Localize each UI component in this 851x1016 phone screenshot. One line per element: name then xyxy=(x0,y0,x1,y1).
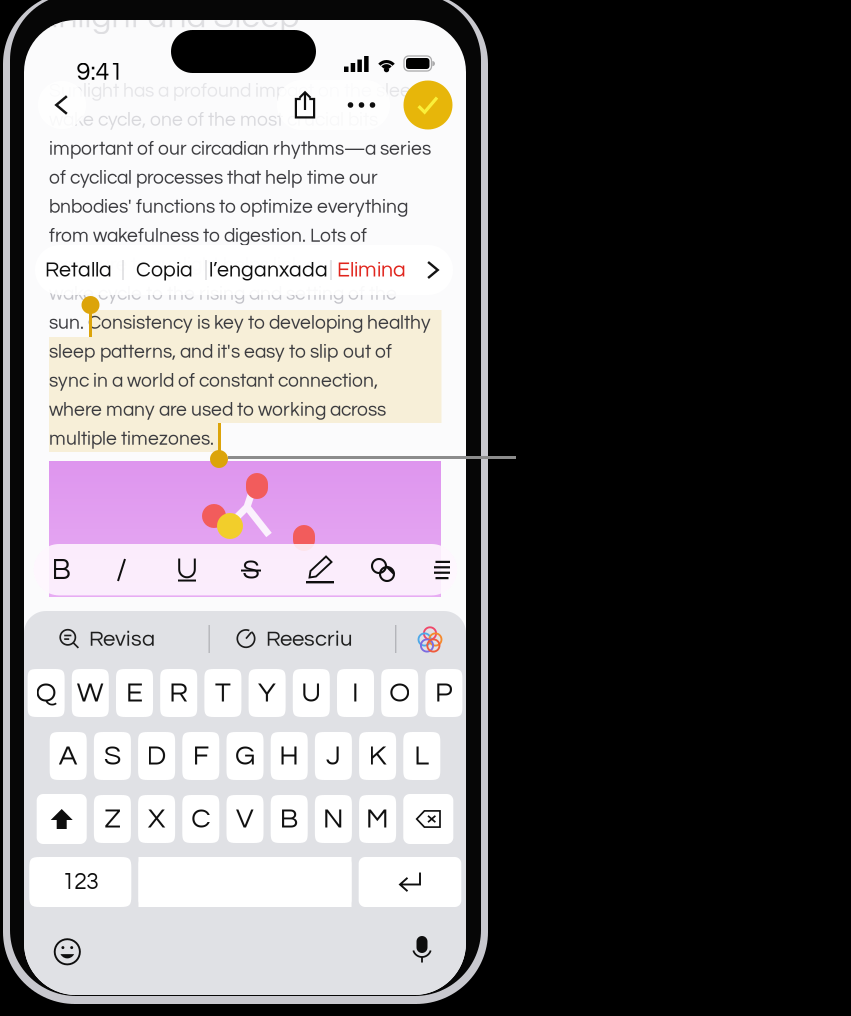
button[interactable]: Bold xyxy=(24,20,466,995)
button[interactable]: 123 xyxy=(29,857,131,907)
button[interactable]: List style xyxy=(24,20,466,995)
staticText: H xyxy=(279,742,299,770)
button[interactable]: X xyxy=(138,795,175,843)
button[interactable]: Z xyxy=(94,795,131,843)
button[interactable]: S xyxy=(94,732,131,780)
button[interactable]: Share xyxy=(277,80,333,130)
staticText: multiple timezones. xyxy=(49,429,214,449)
staticText: Q xyxy=(36,679,57,707)
button[interactable]: Strikethrough xyxy=(24,20,466,995)
staticText: S xyxy=(104,742,121,770)
staticText: Revisa xyxy=(89,628,155,650)
button[interactable]: Apple Intelligence xyxy=(24,20,466,995)
button[interactable]: E xyxy=(116,669,153,717)
staticText: T xyxy=(215,679,231,707)
staticText: I xyxy=(352,679,359,707)
staticText: B xyxy=(280,805,299,833)
button[interactable]: U xyxy=(293,669,330,717)
staticText: Elimina xyxy=(337,259,406,281)
staticText: bnbodies' functions to optimize everythi… xyxy=(49,197,408,217)
staticText: wake cycle, one of the most crucial bits xyxy=(49,110,378,130)
button[interactable]: T xyxy=(204,669,241,717)
button[interactable]: I xyxy=(337,669,374,717)
staticText: A xyxy=(59,742,78,770)
staticText: O xyxy=(389,679,410,707)
staticText: Retalla xyxy=(45,259,112,281)
staticText: K xyxy=(369,742,387,770)
staticText: V xyxy=(236,805,254,833)
button[interactable]: Dictate xyxy=(24,20,466,995)
button[interactable]: W xyxy=(72,669,109,717)
staticText: Z xyxy=(104,805,120,833)
button[interactable]: B xyxy=(271,795,308,843)
staticText: important of our circadian rhythms—a ser… xyxy=(49,139,431,159)
staticText: Reescriu xyxy=(266,628,352,650)
staticText: E xyxy=(126,679,143,707)
button[interactable]: V xyxy=(226,795,263,843)
staticText: Sunlight has a profound impact on the sl… xyxy=(49,81,429,101)
button[interactable]: Underline xyxy=(24,20,466,995)
button[interactable]: Shift xyxy=(37,794,87,844)
staticText: M xyxy=(366,805,389,833)
button[interactable]: D xyxy=(138,732,175,780)
staticText: R xyxy=(169,679,188,707)
staticText: sleep patterns, and it's easy to slip ou… xyxy=(49,342,392,362)
staticText: exposure to sunlight helps link our more xyxy=(49,255,384,275)
staticText: W xyxy=(77,679,104,707)
button[interactable]: R xyxy=(160,669,197,717)
staticText: X xyxy=(148,805,165,833)
button[interactable]: H xyxy=(271,732,308,780)
button[interactable]: A xyxy=(50,732,87,780)
staticText: J xyxy=(326,742,341,770)
staticText: wake cycle to the rising and setting of … xyxy=(49,284,397,304)
button[interactable]: l’enganxada xyxy=(206,245,330,295)
button[interactable]: Link xyxy=(24,20,466,995)
button[interactable]: Copia xyxy=(123,245,205,295)
button[interactable]: More xyxy=(333,80,390,130)
staticText: C xyxy=(191,805,210,833)
staticText: L xyxy=(414,742,429,770)
button[interactable]: C xyxy=(182,795,219,843)
button[interactable]: Delete xyxy=(403,794,453,844)
button[interactable]: Highlight xyxy=(24,20,466,995)
button[interactable]: O xyxy=(381,669,418,717)
staticText: Sunlight and Sleep xyxy=(18,0,299,34)
staticText: P xyxy=(435,679,453,707)
staticText: 9:41 xyxy=(76,59,123,85)
button[interactable]: Reescriu xyxy=(24,20,466,995)
button[interactable]: Done xyxy=(24,20,466,995)
staticText: from wakefulness to digestion. Lots of xyxy=(49,226,367,246)
button[interactable]: F xyxy=(182,732,219,780)
button[interactable]: Return xyxy=(359,857,461,907)
button[interactable]: Y xyxy=(249,669,286,717)
staticText: sun. Consistency is key to developing he… xyxy=(49,313,431,333)
staticText: Y xyxy=(258,679,276,707)
button[interactable]: G xyxy=(226,732,263,780)
button[interactable]: N xyxy=(315,795,352,843)
staticText: G xyxy=(235,742,255,770)
button[interactable]: Retalla xyxy=(34,245,122,295)
staticText: l’enganxada xyxy=(209,259,328,281)
button[interactable]: K xyxy=(359,732,396,780)
button[interactable]: J xyxy=(315,732,352,780)
staticText: F xyxy=(193,742,209,770)
button[interactable]: P xyxy=(425,669,462,717)
button[interactable]: M xyxy=(359,795,396,843)
staticText: of cyclical processes that help time our xyxy=(49,168,378,188)
staticText: B xyxy=(51,555,70,585)
button[interactable]: Elimina xyxy=(331,245,411,295)
staticText: 123 xyxy=(62,870,98,894)
button[interactable]: More editing actions xyxy=(411,245,453,295)
staticText: N xyxy=(323,805,344,833)
button[interactable]: Italic xyxy=(24,20,466,995)
button[interactable]: L xyxy=(403,732,440,780)
button[interactable]: Emoji keyboard xyxy=(24,20,466,995)
button[interactable]: Back xyxy=(24,20,466,995)
button[interactable]: Revisa xyxy=(24,20,466,995)
button[interactable]: Q xyxy=(28,669,65,717)
staticText: Copia xyxy=(136,259,193,281)
staticText: D xyxy=(147,742,167,770)
staticText: sync in a world of constant connection, xyxy=(49,371,378,391)
staticText: where many are used to working across xyxy=(49,400,386,420)
